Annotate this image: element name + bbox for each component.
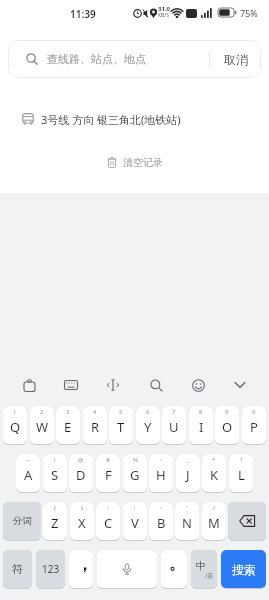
staticText: L [238, 466, 245, 484]
button[interactable] [143, 372, 169, 398]
staticText: 符 [12, 562, 23, 576]
staticText: ( [54, 504, 56, 512]
button[interactable] [100, 372, 126, 398]
staticText: ， [76, 554, 93, 575]
button[interactable]: 5 [109, 406, 133, 445]
button[interactable] [97, 550, 157, 589]
staticText: 75% [240, 7, 258, 19]
button[interactable]: 1 [3, 406, 27, 445]
button[interactable]: 分词 [3, 502, 41, 541]
staticText: 31.0 [158, 5, 170, 13]
button[interactable]: ) [70, 502, 94, 541]
button[interactable]: - [149, 454, 173, 493]
button[interactable]: 查线路、站点、地点 [8, 40, 261, 78]
staticText: R [91, 418, 100, 436]
button[interactable]: / [202, 502, 226, 541]
staticText: : [107, 504, 109, 512]
staticText: 6 [146, 408, 150, 416]
staticText: - [160, 504, 162, 512]
staticText: ! [54, 456, 56, 464]
staticText: 清空记录 [123, 156, 163, 169]
staticText: 3 [66, 408, 70, 416]
staticText: 0 [252, 408, 256, 416]
staticText: KB/S [158, 12, 169, 19]
staticText: * [212, 456, 216, 464]
button[interactable]: ~ [16, 454, 40, 493]
staticText: V [131, 514, 139, 532]
staticText: 。 [169, 554, 185, 574]
staticText: 5 [119, 408, 123, 416]
button[interactable]: 123 [36, 550, 65, 589]
staticText: D [76, 466, 86, 484]
button[interactable]: % [123, 454, 147, 493]
button[interactable]: _ [176, 454, 200, 493]
staticText: ; [134, 504, 136, 512]
button[interactable]: 。 [161, 550, 187, 589]
staticText: E [64, 418, 72, 436]
button[interactable]: # [96, 454, 120, 493]
button[interactable]: 0 [242, 406, 266, 445]
button[interactable]: 4 [83, 406, 107, 445]
staticText: 11:39 [70, 7, 96, 21]
staticText: X [78, 514, 86, 532]
staticText: 2 [40, 408, 44, 416]
staticText: _ [187, 456, 190, 464]
button[interactable] [16, 372, 42, 398]
button[interactable]: ， [69, 550, 93, 589]
staticText: H [156, 466, 166, 484]
button[interactable]: 3 [56, 406, 80, 445]
button[interactable]: * [202, 454, 226, 493]
button[interactable]: 符 [3, 550, 32, 589]
staticText: J [186, 466, 190, 484]
staticText: ~ [26, 456, 30, 464]
staticText: ) [81, 504, 83, 512]
staticText: K [210, 466, 219, 484]
staticText: 搜索 [232, 562, 256, 577]
button[interactable]: 取消 [210, 40, 261, 78]
button[interactable]: 搜索 [221, 550, 266, 589]
staticText: 7 [172, 408, 176, 416]
button[interactable] [227, 372, 253, 398]
button[interactable]: 7 [162, 406, 186, 445]
staticText: 取消 [224, 52, 248, 67]
button[interactable]: ? [229, 454, 253, 493]
staticText: 9 [225, 408, 229, 416]
staticText: G [130, 466, 140, 484]
staticText: U [169, 418, 179, 436]
staticText: 中 [196, 559, 206, 572]
button[interactable]: 6 [136, 406, 160, 445]
staticText: / [213, 504, 216, 512]
staticText: I [199, 418, 204, 436]
button[interactable]: 3号线 方向 银三角北(地铁站) [22, 106, 269, 132]
button[interactable]: ; [123, 502, 147, 541]
button[interactable]: 8 [189, 406, 213, 445]
button[interactable] [185, 372, 211, 398]
button[interactable]: : [96, 502, 120, 541]
button[interactable]: ' [175, 502, 199, 541]
staticText: C [104, 514, 113, 532]
button[interactable]: 中 [191, 550, 217, 589]
staticText: T [117, 418, 125, 436]
button[interactable] [228, 502, 266, 541]
staticText: # [106, 456, 110, 464]
staticText: % [133, 456, 138, 464]
button[interactable]: ( [43, 502, 67, 541]
staticText: W [36, 418, 49, 436]
button[interactable]: 9 [215, 406, 239, 445]
staticText: M [208, 514, 220, 532]
button[interactable]: 清空记录 [107, 156, 163, 169]
button[interactable]: 2 [30, 406, 54, 445]
staticText: 123 [42, 562, 60, 576]
button[interactable]: ! [43, 454, 67, 493]
button[interactable]: - [149, 502, 173, 541]
staticText: 分词 [13, 515, 32, 527]
button[interactable]: @ [69, 454, 93, 493]
staticText: Z [51, 514, 59, 532]
button[interactable] [58, 372, 84, 398]
staticText: - [160, 456, 162, 464]
staticText: /英 [205, 572, 214, 580]
staticText: B [157, 514, 166, 532]
staticText: ? [240, 456, 243, 464]
staticText: F [105, 466, 112, 484]
staticText: 1 [13, 408, 17, 416]
